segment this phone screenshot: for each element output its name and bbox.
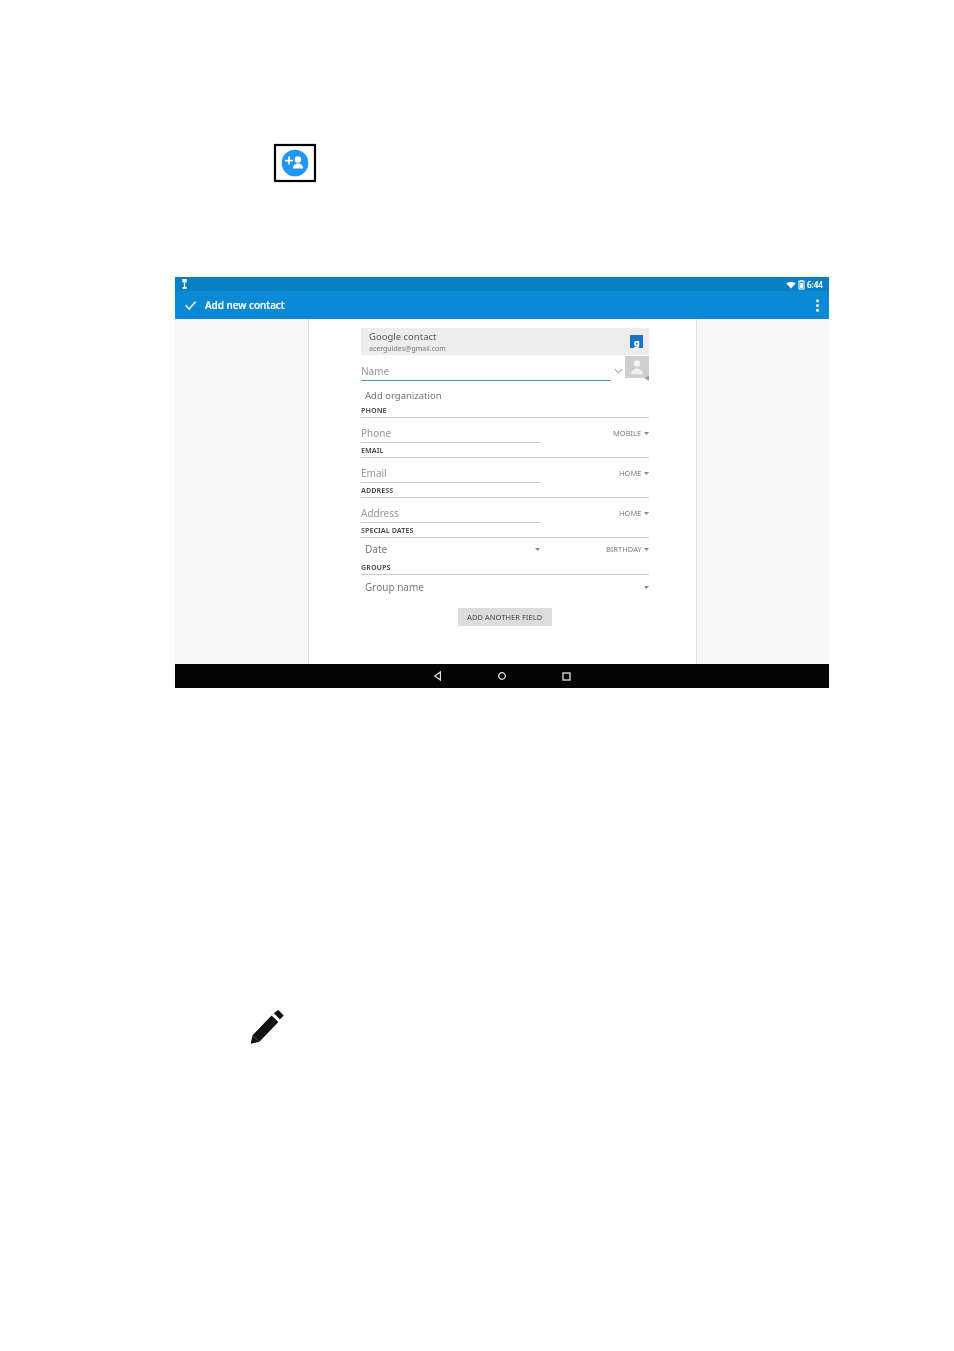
button[interactable]: More options	[805, 291, 829, 319]
staticText: EMAIL	[361, 445, 384, 455]
staticText: ADD ANOTHER FIELD	[467, 612, 543, 622]
staticText: Group name	[365, 580, 424, 594]
staticText: PHONE	[361, 405, 387, 415]
staticText: 6:44	[807, 279, 823, 290]
staticText: Google contact	[369, 330, 437, 343]
button[interactable]: Home	[482, 664, 522, 688]
button[interactable]: Add new contact	[275, 145, 315, 181]
staticText: MOBILE	[613, 428, 642, 438]
button[interactable]: Back	[418, 664, 458, 688]
button[interactable]: Add organization	[361, 387, 649, 403]
staticText: ADDRESS	[361, 485, 394, 495]
button[interactable]: Name	[361, 361, 611, 381]
staticText: acerguides@gmail.com	[369, 344, 446, 354]
staticText: Add new contact	[205, 298, 285, 312]
button[interactable]	[625, 356, 649, 381]
button[interactable]: Google contact	[361, 328, 649, 355]
button[interactable]: Edit	[248, 1008, 286, 1046]
button[interactable]: Email	[361, 458, 649, 483]
staticText: SPECIAL DATES	[361, 525, 414, 535]
button[interactable]: ADD ANOTHER FIELD	[458, 608, 552, 626]
button[interactable]: Recent apps	[546, 664, 586, 688]
staticText: Phone	[361, 426, 392, 440]
staticText: BIRTHDAY	[606, 544, 642, 554]
staticText: Add organization	[365, 389, 442, 402]
staticText: HOME	[619, 468, 642, 478]
button[interactable]: Save contact	[175, 291, 205, 319]
staticText: Name	[361, 364, 390, 378]
button[interactable]: Address	[361, 498, 649, 523]
staticText: HOME	[619, 508, 642, 518]
staticText: Email	[361, 466, 387, 480]
button[interactable]: Expand name	[611, 361, 625, 381]
button[interactable]: Date	[361, 538, 649, 560]
staticText: Date	[365, 542, 388, 556]
button[interactable]: Group name	[361, 575, 649, 599]
staticText: GROUPS	[361, 562, 391, 572]
staticText: Address	[361, 506, 399, 520]
button[interactable]: Phone	[361, 418, 649, 443]
staticText: g	[634, 336, 640, 348]
